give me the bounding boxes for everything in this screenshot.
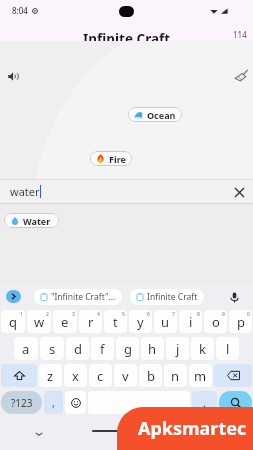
button[interactable]: Clear board (231, 65, 251, 85)
staticText: g (124, 340, 132, 358)
button[interactable]: g (116, 337, 139, 360)
button[interactable]: k (191, 337, 214, 360)
staticText: Fire (109, 153, 126, 165)
button[interactable]: . (192, 391, 217, 414)
button[interactable]: q (1, 310, 25, 333)
staticText: 114 (233, 29, 247, 40)
staticText: , (52, 395, 55, 410)
staticText: w (34, 313, 45, 331)
staticText: i (189, 313, 193, 331)
staticText: 9 (222, 311, 225, 318)
button[interactable]: x (64, 364, 87, 387)
button[interactable]: a (14, 337, 38, 360)
button[interactable]: Infinite Craft (130, 289, 204, 305)
staticText: 7 (172, 311, 175, 318)
button[interactable]: v (114, 364, 137, 387)
button[interactable]: Backspace (214, 364, 252, 387)
staticText: 8 (197, 311, 200, 318)
staticText: n (171, 367, 180, 385)
button[interactable]: "Infinite Craft"... (34, 289, 122, 305)
button[interactable]: h (141, 337, 164, 360)
staticText: y (137, 313, 144, 331)
button[interactable]: o (204, 310, 227, 333)
button[interactable]: Clear text (231, 184, 247, 200)
button[interactable]: , (44, 391, 63, 414)
button[interactable]: i (179, 310, 202, 333)
staticText: 4 (97, 311, 100, 318)
staticText: c (97, 367, 104, 385)
staticText: 1 (20, 311, 23, 318)
staticText: water (10, 184, 40, 199)
staticText: Apksmartec (138, 416, 247, 441)
staticText: s (49, 340, 56, 358)
button[interactable]: z (39, 364, 62, 387)
staticText: v (122, 367, 129, 385)
staticText: d (74, 340, 82, 358)
staticText: ?123 (11, 396, 33, 410)
staticText: e (61, 313, 69, 331)
button[interactable]: l (216, 337, 239, 360)
staticText: Infinite Craft (83, 30, 171, 48)
button[interactable]: Hide keyboard (31, 426, 47, 442)
staticText: t (113, 313, 118, 331)
staticText: p (237, 313, 245, 331)
staticText: h (148, 340, 157, 358)
button[interactable]: u (154, 310, 177, 333)
button[interactable]: Emoji (65, 391, 86, 414)
staticText: z (47, 367, 54, 385)
staticText: j (176, 340, 180, 358)
staticText: x (72, 367, 79, 385)
button[interactable]: r (79, 310, 102, 333)
button[interactable]: Voice input (225, 288, 243, 306)
button[interactable]: n (164, 364, 187, 387)
staticText: Ocean (147, 109, 176, 121)
staticText: b (147, 367, 155, 385)
staticText: u (161, 313, 170, 331)
button[interactable]: f (91, 337, 114, 360)
button[interactable]: y (129, 310, 152, 333)
button[interactable]: m (189, 364, 212, 387)
staticText: 5 (122, 311, 125, 318)
staticText: l (226, 340, 230, 358)
button[interactable]: Space (88, 391, 190, 414)
button[interactable]: j (166, 337, 189, 360)
staticText: 8:04 (12, 5, 28, 16)
staticText: 6 (147, 311, 150, 318)
staticText: Infinite Craft (147, 291, 198, 303)
button[interactable]: t (104, 310, 127, 333)
staticText: o (212, 313, 220, 331)
button[interactable]: Ocean (128, 107, 182, 122)
button[interactable]: More suggestions (6, 290, 21, 303)
staticText: k (199, 340, 206, 358)
button[interactable]: Shift (1, 364, 37, 387)
staticText: Water (23, 215, 51, 227)
staticText: r (88, 313, 94, 331)
staticText: f (100, 340, 105, 358)
staticText: 0 (247, 311, 250, 318)
staticText: . (203, 395, 206, 410)
button[interactable]: ?123 (1, 391, 42, 414)
button[interactable]: p (229, 310, 252, 333)
staticText: 3 (72, 311, 75, 318)
staticText: m (194, 367, 207, 385)
staticText: q (9, 313, 17, 331)
button[interactable]: d (66, 337, 89, 360)
button[interactable]: e (53, 310, 77, 333)
button[interactable]: Search (219, 391, 252, 414)
button[interactable]: s (40, 337, 64, 360)
button[interactable]: Toggle sound (3, 66, 23, 86)
button[interactable]: c (89, 364, 112, 387)
button[interactable]: Fire (90, 151, 132, 166)
button[interactable]: w (27, 310, 51, 333)
staticText: a (22, 340, 30, 358)
button[interactable]: Water (4, 213, 59, 228)
staticText: "Infinite Craft"... (51, 291, 116, 303)
button[interactable]: b (139, 364, 162, 387)
staticText: 2 (46, 311, 49, 318)
